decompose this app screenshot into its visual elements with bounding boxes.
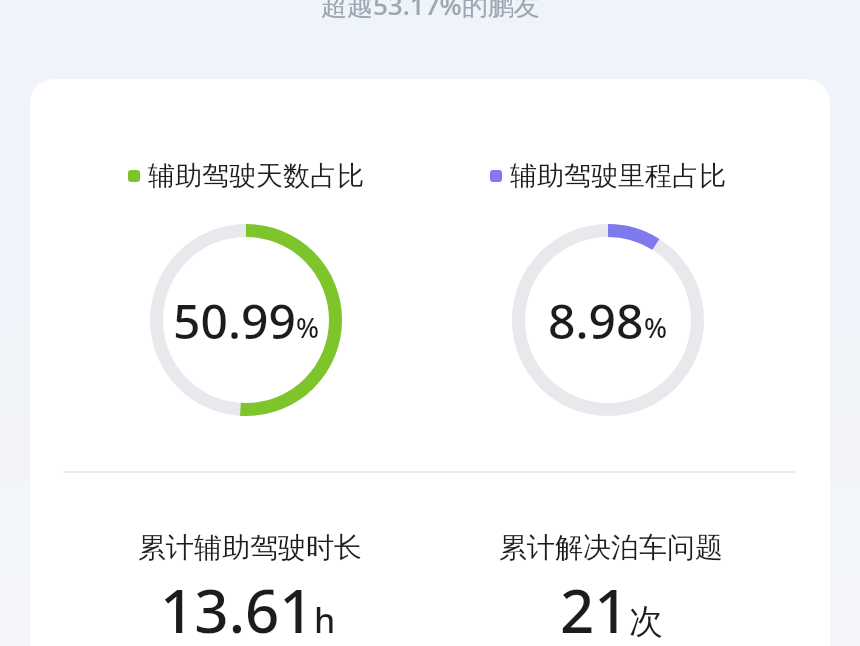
staticText: 辅助驾驶里程占比 (510, 159, 726, 193)
staticText: 累计解决泊车问题 (499, 530, 723, 565)
staticText: 50.99 (173, 288, 296, 353)
staticText: 13.61 (160, 569, 314, 646)
staticText: 超越53.17%的鹏友 (321, 0, 540, 23)
button[interactable]: 辅助驾驶天数占比 (128, 159, 364, 193)
staticText: 辅助驾驶天数占比 (148, 159, 364, 193)
staticText: h (314, 597, 336, 643)
staticText: 8.98 (548, 288, 644, 353)
staticText: % (296, 309, 320, 346)
staticText: 次 (629, 600, 663, 643)
staticText: 累计辅助驾驶时长 (138, 530, 362, 565)
staticText: 21 (560, 569, 629, 646)
staticText: % (644, 309, 668, 346)
button[interactable]: 13.61 (160, 569, 336, 646)
button[interactable]: 辅助驾驶里程占比 (490, 159, 726, 193)
button[interactable]: 21 (560, 569, 663, 646)
